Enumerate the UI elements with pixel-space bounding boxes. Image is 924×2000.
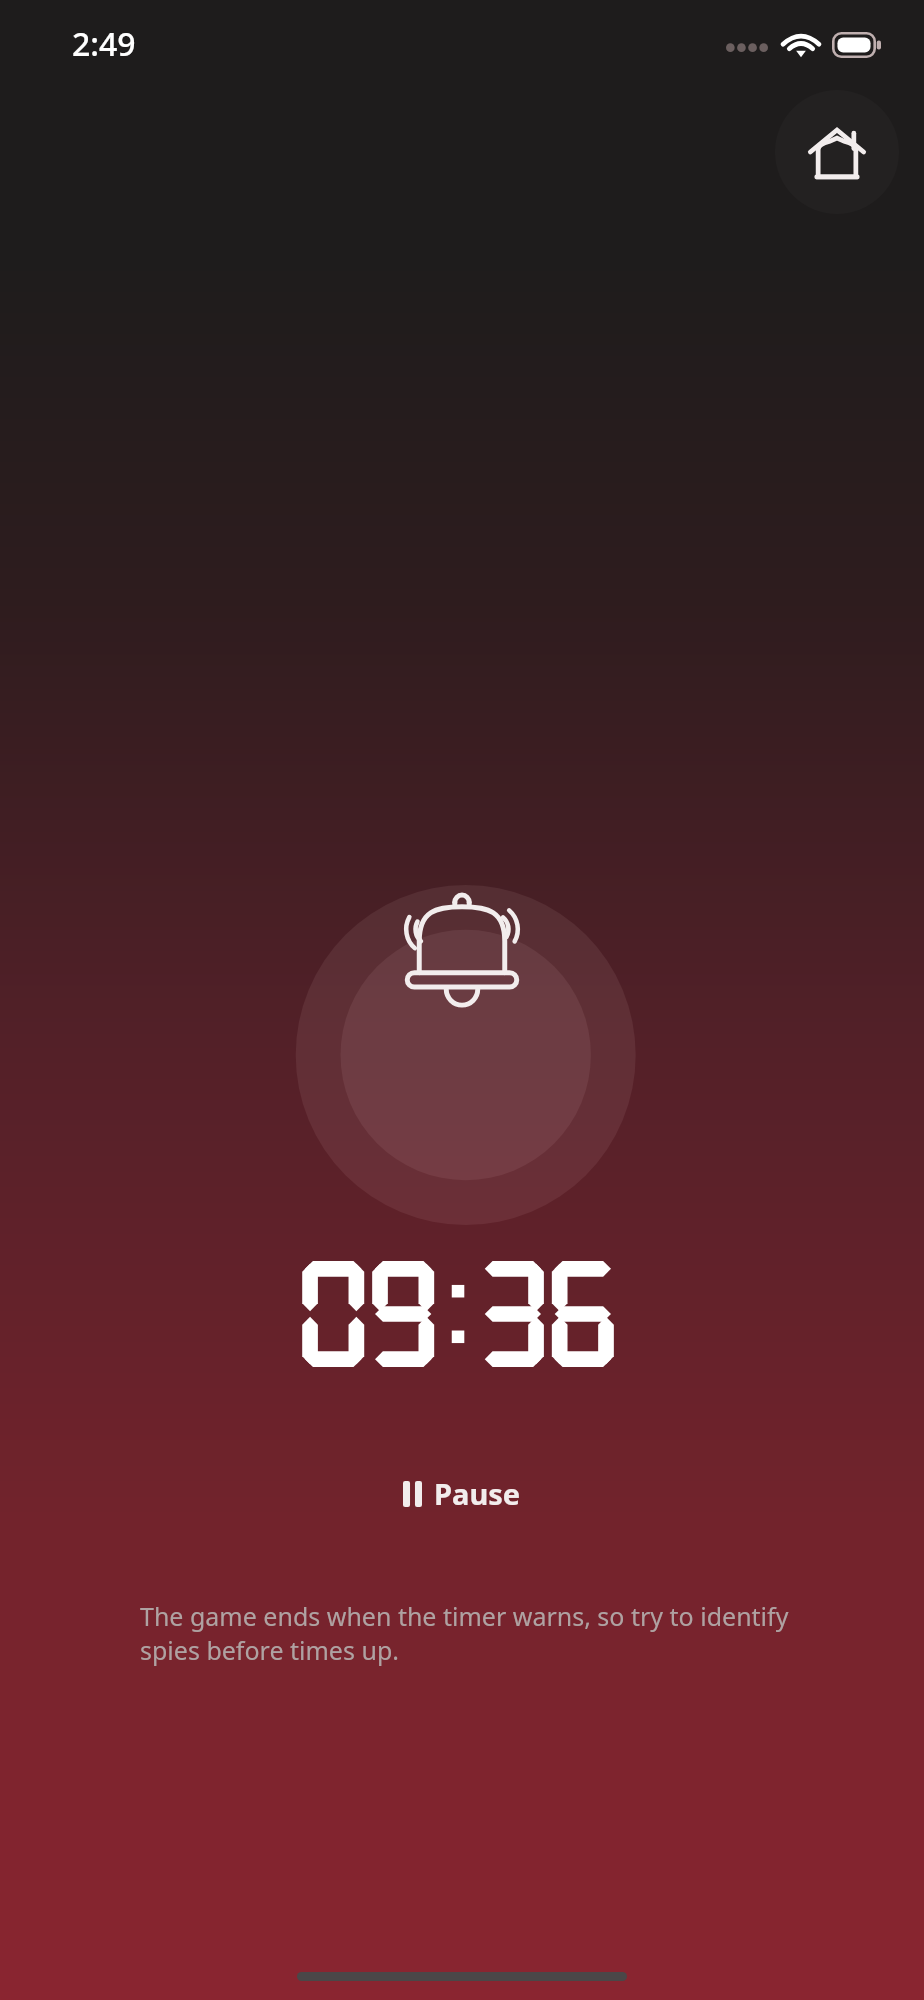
staticText: 2:49 [72,22,136,66]
staticText: Pause [434,1474,521,1513]
staticText: The game ends when the timer warns, so t… [140,1599,812,1668]
button[interactable]: Home [775,90,899,214]
button[interactable]: Pause [385,1464,539,1523]
